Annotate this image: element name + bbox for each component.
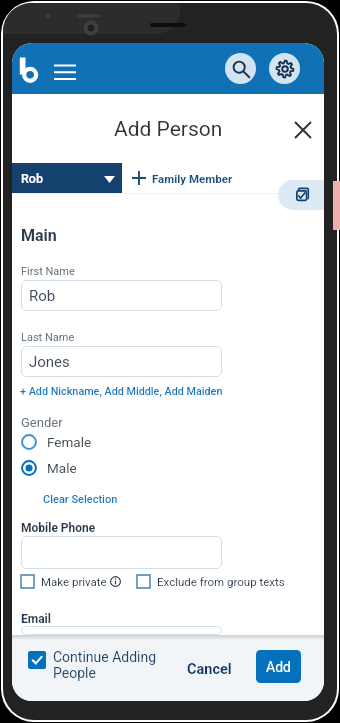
button[interactable]: Clear Selection [43, 493, 118, 506]
button[interactable] [21, 626, 222, 635]
button[interactable]: Menu [51, 55, 79, 83]
staticText: First Name [21, 265, 75, 278]
button[interactable]: Add [256, 650, 301, 683]
button[interactable]: Exclude from group texts [137, 575, 285, 588]
button[interactable]: + Add Nickname, Add Middle, Add Maiden [20, 385, 223, 398]
button[interactable]: Jones [21, 346, 222, 377]
button[interactable]: Make private [21, 575, 121, 588]
button[interactable]: Rob [21, 280, 222, 311]
button[interactable]: Cancel [175, 653, 244, 686]
button[interactable]: Close [287, 114, 319, 146]
button[interactable]: Rob [12, 163, 122, 193]
staticText: Add [266, 659, 291, 675]
staticText: Rob [29, 287, 56, 305]
staticText: Last Name [21, 331, 75, 344]
staticText: Gender [21, 415, 63, 430]
staticText: Male [47, 460, 77, 476]
staticText: Add Person [114, 117, 223, 142]
staticText: Make private [41, 575, 107, 588]
button[interactable]: Male [21, 458, 77, 478]
staticText: Continue Adding People [53, 649, 157, 682]
button[interactable]: Search [225, 53, 256, 84]
staticText: Jones [29, 353, 70, 371]
staticText: Cancel [187, 661, 232, 678]
staticText: Female [47, 434, 92, 450]
staticText: Mobile Phone [21, 521, 96, 535]
staticText: Family Member [152, 172, 233, 185]
button[interactable] [21, 536, 222, 569]
staticText: Main [21, 226, 57, 245]
staticText: Rob [21, 171, 43, 186]
button[interactable]: Home [14, 53, 46, 85]
staticText: Email [21, 612, 51, 626]
button[interactable]: Continue Adding People [28, 651, 157, 684]
button[interactable]: Female [21, 432, 92, 452]
button[interactable]: Settings [269, 53, 300, 84]
staticText: Exclude from group texts [157, 575, 285, 588]
button[interactable]: Copy from [278, 180, 324, 210]
button[interactable]: Family Member [132, 163, 233, 193]
